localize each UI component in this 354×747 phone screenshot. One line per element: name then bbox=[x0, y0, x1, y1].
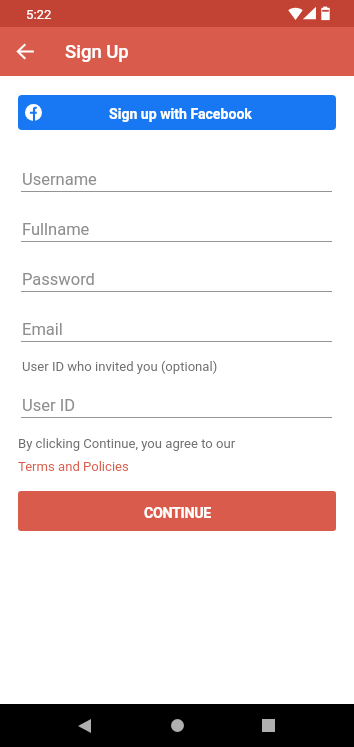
staticText: Sign Up bbox=[65, 41, 129, 63]
staticText: Fullname bbox=[22, 220, 90, 239]
button[interactable]: User ID bbox=[21, 387, 332, 418]
button[interactable]: Back bbox=[60, 704, 108, 747]
button[interactable]: Fullname bbox=[21, 211, 332, 242]
staticText: User ID who invited you (optional) bbox=[22, 359, 218, 374]
button[interactable]: CONTINUE bbox=[18, 491, 336, 531]
staticText: Terms and Policies bbox=[18, 459, 129, 474]
button[interactable]: Email bbox=[21, 311, 332, 342]
button[interactable]: Terms and Policies bbox=[18, 459, 129, 474]
staticText: Username bbox=[22, 170, 97, 189]
staticText: Sign up with Facebook bbox=[109, 106, 252, 123]
button[interactable]: Sign up with Facebook bbox=[18, 95, 336, 130]
staticText: CONTINUE bbox=[144, 505, 211, 522]
button[interactable]: Back bbox=[9, 35, 42, 68]
staticText: Email bbox=[22, 320, 63, 339]
button[interactable]: Username bbox=[21, 161, 332, 192]
staticText: 5:22 bbox=[26, 7, 52, 22]
button[interactable]: Recents bbox=[244, 704, 292, 747]
button[interactable]: Home bbox=[153, 704, 201, 747]
button[interactable]: Password bbox=[21, 261, 332, 292]
staticText: User ID bbox=[22, 396, 75, 415]
staticText: By clicking Continue, you agree to our bbox=[18, 436, 236, 451]
staticText: Password bbox=[22, 270, 95, 289]
